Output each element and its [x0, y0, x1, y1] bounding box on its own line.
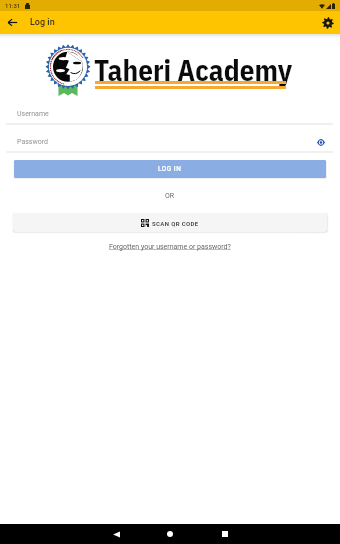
- button[interactable]: Show password: [314, 135, 328, 149]
- button[interactable]: Back: [3, 13, 22, 32]
- staticText: Log in: [30, 17, 55, 28]
- button[interactable]: Forgotten your username or password?: [109, 243, 231, 251]
- button[interactable]: SCAN QR CODE: [13, 213, 327, 232]
- staticText: Username: [17, 110, 49, 118]
- staticText: Password: [17, 138, 48, 146]
- staticText: SCAN QR CODE: [152, 220, 199, 227]
- staticText: 11:31: [5, 2, 21, 9]
- staticText: LOG IN: [158, 165, 182, 173]
- staticText: Taheri Academy: [94, 51, 293, 89]
- button[interactable]: LOG IN: [14, 160, 326, 178]
- button[interactable]: Recent apps: [210, 524, 240, 544]
- button[interactable]: Settings: [318, 13, 337, 32]
- staticText: OR: [165, 192, 175, 200]
- button[interactable]: Username: [0, 97, 340, 125]
- button[interactable]: Home: [155, 524, 185, 544]
- button[interactable]: Back: [101, 524, 131, 544]
- button[interactable]: Password: [0, 125, 340, 153]
